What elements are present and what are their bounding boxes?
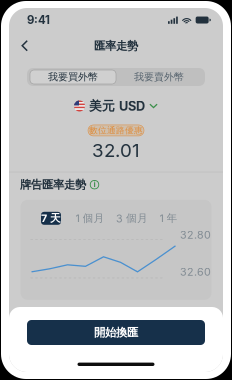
staticText: 32.80 <box>180 228 211 241</box>
staticText: 32.01 <box>92 139 140 162</box>
button[interactable]: Back <box>15 35 35 57</box>
staticText: 3 個月 <box>116 212 148 225</box>
button[interactable]: 我要買外幣 <box>30 70 116 84</box>
staticText: 我要買外幣 <box>48 71 98 83</box>
staticText: 牌告匯率走勢 <box>20 177 86 192</box>
button[interactable]: 開始換匯 <box>27 320 205 345</box>
staticText: 1 年 <box>159 212 177 225</box>
staticText: 9:41 <box>27 13 50 27</box>
staticText: 1 個月 <box>75 212 104 225</box>
button[interactable]: 1 年 <box>156 212 180 225</box>
staticText: 美元 USD <box>89 98 145 114</box>
button[interactable]: 我要賣外幣 <box>116 70 202 84</box>
staticText: 數位通路優惠 <box>89 125 143 136</box>
staticText: 32.60 <box>180 265 211 278</box>
staticText: 匯率走勢 <box>94 39 138 53</box>
button[interactable]: 1 個月 <box>74 212 106 225</box>
staticText: 開始換匯 <box>94 325 138 340</box>
button[interactable]: 3 個月 <box>116 212 148 225</box>
staticText: 我要賣外幣 <box>134 71 184 83</box>
button[interactable]: 7 天 <box>41 212 61 225</box>
staticText: i <box>93 179 95 189</box>
staticText: 7 天 <box>41 212 61 225</box>
